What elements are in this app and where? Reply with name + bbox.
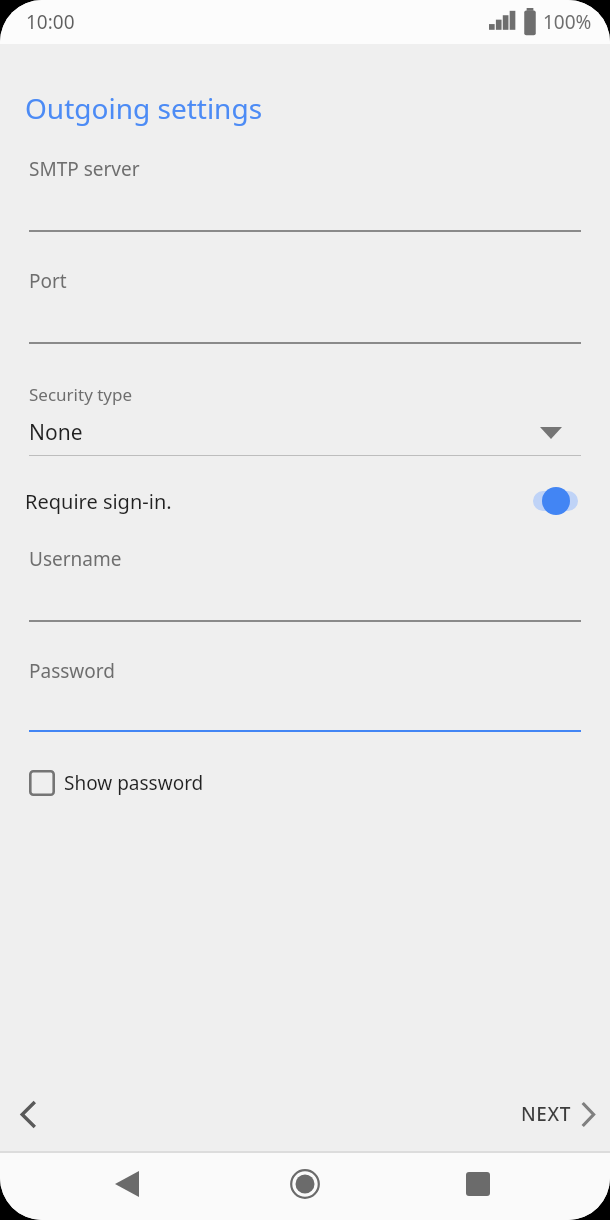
button[interactable] xyxy=(29,150,581,234)
button[interactable] xyxy=(29,540,581,624)
staticText: Outgoing settings xyxy=(25,89,263,127)
staticText: SMTP server xyxy=(29,156,140,182)
button[interactable] xyxy=(0,476,610,526)
staticText: Require sign-in. xyxy=(25,488,172,515)
button[interactable]: NEXT xyxy=(505,1086,610,1142)
staticText: Username xyxy=(29,546,122,572)
button[interactable] xyxy=(29,378,581,456)
staticText: Security type xyxy=(29,383,133,406)
button[interactable] xyxy=(29,652,581,736)
staticText: None xyxy=(29,418,83,447)
staticText: Password xyxy=(29,658,115,684)
button[interactable]: Back xyxy=(0,1086,56,1142)
button[interactable]: Show password xyxy=(22,762,282,804)
staticText: NEXT xyxy=(521,1101,572,1127)
staticText: Show password xyxy=(64,770,204,796)
staticText: 100% xyxy=(543,9,592,35)
button[interactable]: Back xyxy=(98,1155,156,1213)
button[interactable] xyxy=(29,262,581,346)
button[interactable]: Home xyxy=(276,1155,334,1213)
button[interactable]: Recent apps xyxy=(449,1155,507,1213)
staticText: 10:00 xyxy=(26,9,75,35)
staticText: Port xyxy=(29,268,67,294)
